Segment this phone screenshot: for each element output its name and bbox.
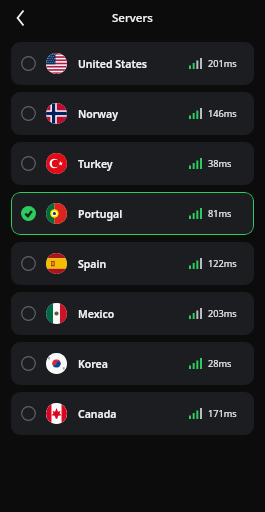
staticText: 146ms	[208, 107, 237, 120]
button[interactable]: Portugal	[11, 192, 254, 235]
button[interactable]: Norway	[11, 92, 254, 135]
staticText: Turkey	[78, 157, 113, 171]
staticText: 122ms	[208, 257, 237, 270]
button[interactable]: Turkey	[11, 142, 254, 185]
staticText: Servers	[112, 10, 153, 26]
staticText: 81ms	[208, 207, 232, 220]
staticText: 28ms	[208, 357, 232, 370]
staticText: Norway	[78, 107, 118, 121]
button[interactable]: Korea	[11, 342, 254, 385]
button[interactable]: United States	[11, 42, 254, 85]
button[interactable]: Spain	[11, 242, 254, 285]
staticText: United States	[78, 57, 147, 71]
staticText: Portugal	[78, 207, 123, 221]
staticText: Canada	[78, 407, 117, 421]
button[interactable]: Canada	[11, 392, 254, 435]
staticText: Korea	[78, 357, 108, 371]
staticText: 201ms	[208, 57, 237, 70]
staticText: 171ms	[208, 407, 237, 420]
staticText: 38ms	[208, 157, 232, 170]
button[interactable]: Back	[6, 3, 36, 33]
staticText: Spain	[78, 257, 107, 271]
staticText: 203ms	[208, 307, 237, 320]
button[interactable]: Mexico	[11, 292, 254, 335]
staticText: Mexico	[78, 307, 115, 321]
